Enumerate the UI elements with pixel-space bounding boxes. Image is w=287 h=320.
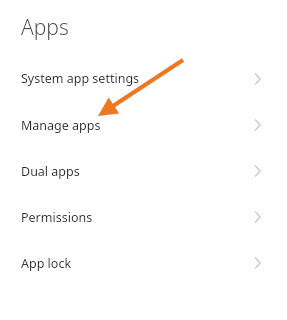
button[interactable]: Manage apps <box>0 102 287 148</box>
staticText: Apps <box>21 13 69 42</box>
staticText: System app settings <box>21 70 140 87</box>
button[interactable]: App lock <box>0 240 287 286</box>
button[interactable]: System app settings <box>0 55 287 102</box>
staticText: App lock <box>21 255 72 272</box>
staticText: Manage apps <box>21 117 101 134</box>
button[interactable]: Permissions <box>0 194 287 240</box>
staticText: Permissions <box>21 209 93 226</box>
button[interactable]: Dual apps <box>0 148 287 194</box>
other: Annotation arrow pointing to Manage apps <box>0 0 287 320</box>
staticText: Dual apps <box>21 163 80 180</box>
